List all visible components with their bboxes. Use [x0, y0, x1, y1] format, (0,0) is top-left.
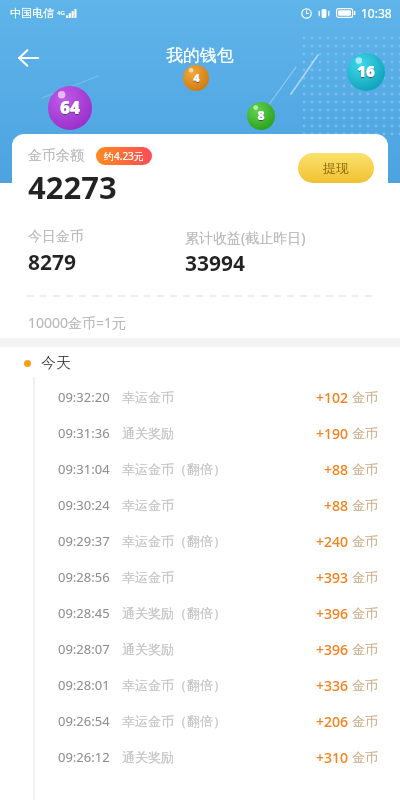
- staticText: +310: [316, 748, 349, 767]
- staticText: +393: [316, 568, 349, 587]
- staticText: 09:26:54: [58, 712, 110, 730]
- staticText: 金币: [352, 713, 378, 729]
- staticText: 金币: [352, 389, 378, 405]
- staticText: 幸运金币（翻倍）: [122, 533, 226, 549]
- staticText: 累计收益(截止昨日): [185, 228, 306, 247]
- staticText: 8: [257, 108, 265, 124]
- staticText: 金币: [352, 533, 378, 549]
- staticText: +336: [316, 676, 349, 695]
- staticText: 幸运金币（翻倍）: [122, 461, 226, 477]
- staticText: 09:30:24: [58, 496, 110, 514]
- staticText: 金币: [352, 677, 378, 693]
- staticText: 幸运金币: [122, 497, 174, 513]
- staticText: 金币: [352, 605, 378, 621]
- staticText: 09:31:36: [58, 424, 110, 442]
- button[interactable]: 09:26:54: [0, 703, 400, 739]
- staticText: 金币: [352, 425, 378, 441]
- staticText: 09:28:56: [58, 568, 110, 586]
- button[interactable]: 09:30:24: [0, 487, 400, 523]
- staticText: 09:29:37: [58, 532, 110, 550]
- staticText: 金币: [352, 749, 378, 765]
- staticText: 10:38: [361, 5, 392, 21]
- button[interactable]: 09:31:36: [0, 415, 400, 451]
- staticText: 64: [60, 97, 80, 120]
- button[interactable]: 提现: [298, 153, 374, 183]
- staticText: 09:28:45: [58, 604, 110, 622]
- staticText: 09:32:20: [58, 388, 110, 406]
- staticText: 金币余额: [28, 147, 84, 165]
- staticText: 幸运金币: [122, 389, 174, 405]
- button[interactable]: 09:32:20: [0, 379, 400, 415]
- staticText: 16: [357, 61, 375, 81]
- button[interactable]: 09:29:37: [0, 523, 400, 559]
- staticText: 通关奖励（翻倍）: [122, 605, 226, 621]
- staticText: 金币: [352, 497, 378, 513]
- staticText: 16: [357, 62, 375, 82]
- staticText: 约4.23元: [104, 149, 144, 163]
- staticText: 通关奖励: [122, 425, 174, 441]
- staticText: 8279: [28, 248, 77, 277]
- staticText: 4: [193, 70, 200, 85]
- staticText: 通关奖励: [122, 641, 174, 657]
- button[interactable]: 09:28:56: [0, 559, 400, 595]
- staticText: 幸运金币: [122, 569, 174, 585]
- staticText: +102: [316, 388, 349, 407]
- staticText: 09:26:12: [58, 748, 110, 766]
- button[interactable]: 09:28:07: [0, 631, 400, 667]
- button[interactable]: Back: [6, 36, 50, 80]
- button[interactable]: 09:26:12: [0, 739, 400, 775]
- staticText: 09:28:07: [58, 640, 110, 658]
- staticText: +206: [316, 712, 349, 731]
- staticText: 8: [257, 107, 265, 123]
- staticText: 33994: [185, 249, 246, 278]
- staticText: 金币: [352, 641, 378, 657]
- staticText: +190: [316, 424, 349, 443]
- button[interactable]: 09:28:45: [0, 595, 400, 631]
- staticText: 10000金币=1元: [28, 313, 127, 332]
- staticText: 金币: [352, 461, 378, 477]
- button[interactable]: 09:31:04: [0, 451, 400, 487]
- staticText: +240: [316, 532, 349, 551]
- staticText: 幸运金币（翻倍）: [122, 713, 226, 729]
- staticText: 4: [193, 71, 200, 86]
- staticText: 中国电信: [10, 6, 54, 20]
- staticText: +88: [324, 496, 349, 515]
- staticText: 金币: [352, 569, 378, 585]
- staticText: 09:31:04: [58, 460, 110, 478]
- staticText: +396: [316, 604, 349, 623]
- staticText: 幸运金币（翻倍）: [122, 677, 226, 693]
- staticText: 通关奖励: [122, 749, 174, 765]
- staticText: 我的钱包: [166, 45, 234, 66]
- staticText: 4G: [57, 9, 65, 17]
- staticText: 64: [60, 96, 80, 119]
- staticText: 09:28:01: [58, 676, 110, 694]
- staticText: 42273: [28, 166, 117, 208]
- staticText: 今日金币: [28, 228, 84, 246]
- staticText: 提现: [323, 160, 349, 176]
- staticText: +88: [324, 460, 349, 479]
- staticText: 今天: [41, 354, 71, 373]
- staticText: +396: [316, 640, 349, 659]
- button[interactable]: 09:28:01: [0, 667, 400, 703]
